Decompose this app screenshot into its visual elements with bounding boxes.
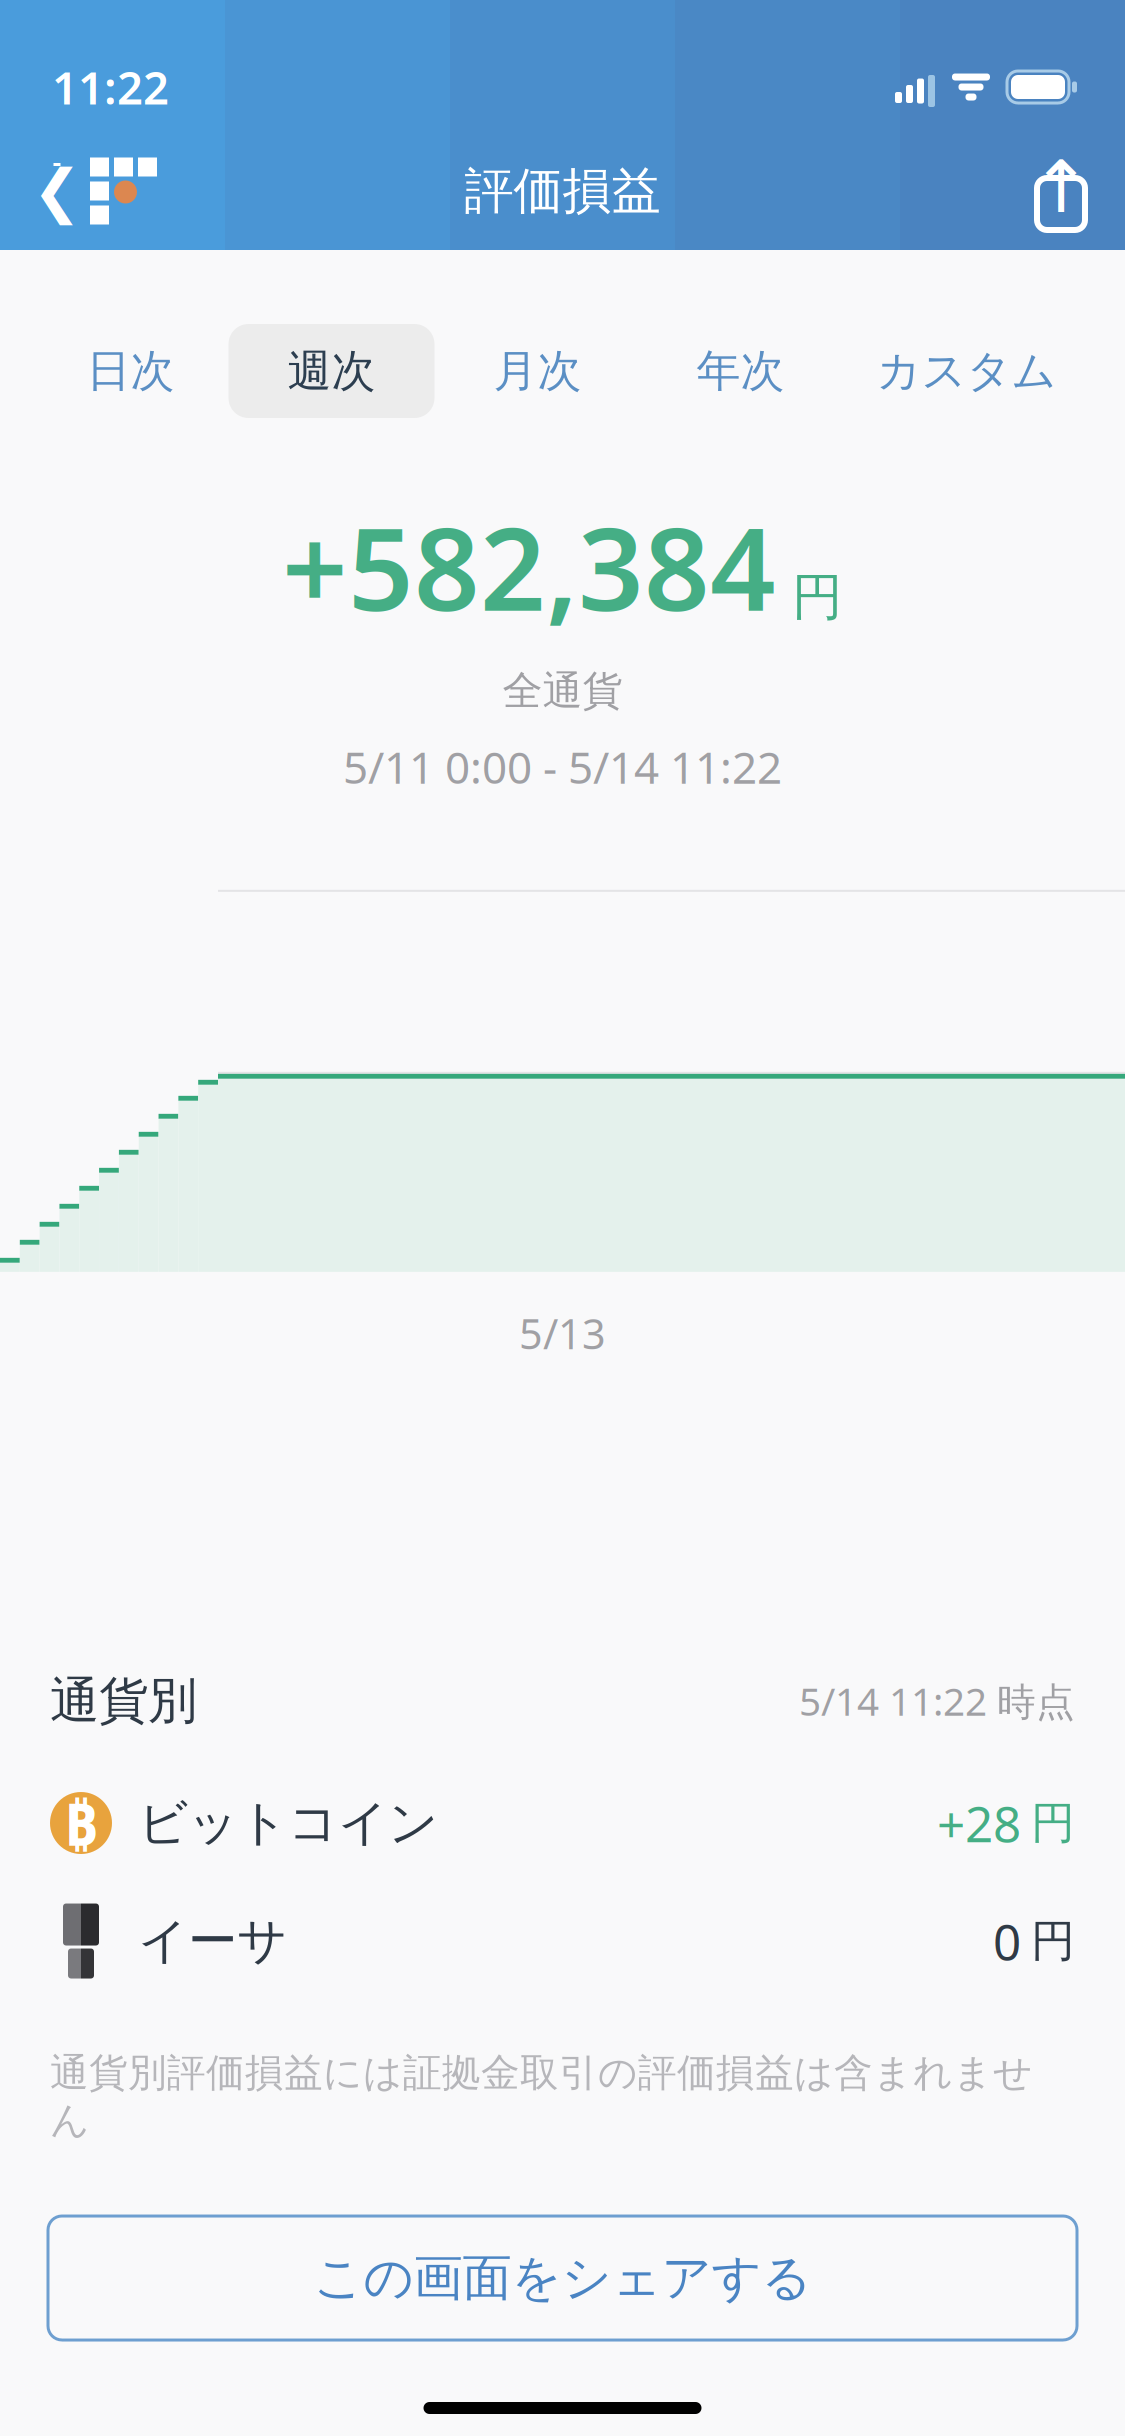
button[interactable]: この画面をシェアする (48, 2216, 1077, 2340)
staticText: 月次 (493, 344, 581, 398)
button[interactable]: 戻る (0, 136, 179, 246)
staticText: 5/13 (519, 1306, 606, 1361)
staticText: 0 (176, 1227, 200, 1282)
staticText: ❮ (32, 158, 81, 224)
staticText: ₿ (64, 1784, 98, 1862)
staticText: 通貨別 (50, 1670, 197, 1731)
button[interactable]: 年次 (640, 324, 840, 418)
staticText: 円 (1031, 1914, 1075, 1968)
staticText: 11:22 (52, 57, 169, 117)
button[interactable]: 共有 (997, 136, 1125, 246)
staticText: 日次 (86, 344, 174, 398)
button[interactable]: 月次 (434, 324, 640, 418)
button[interactable]: カスタム (840, 324, 1092, 418)
button[interactable]: ₿ (0, 1771, 1125, 1875)
staticText: 500,000 (45, 1045, 200, 1100)
staticText: カスタム (876, 344, 1056, 398)
staticText: 年次 (696, 344, 784, 398)
staticText: この画面をシェアする (313, 2248, 811, 2308)
button[interactable]: 週次 (228, 324, 434, 418)
staticText: イーサ (138, 1911, 287, 1971)
staticText: 5/11 0:00 - 5/14 11:22 (343, 737, 782, 796)
staticText: 5/14 11:22 時点 (799, 1675, 1075, 1726)
staticText: 評価損益 (464, 161, 660, 221)
staticText: +582,384 (282, 490, 776, 642)
button[interactable]: イーサ (0, 1889, 1125, 1993)
button[interactable]: 日次 (32, 324, 228, 418)
staticText: 週次 (287, 344, 375, 398)
staticText: ビットコイン (138, 1793, 438, 1853)
staticText: 全通貨 (502, 666, 622, 715)
staticText: 円 (792, 566, 843, 628)
staticText: 0 (993, 1908, 1021, 1974)
staticText: 通貨別評価損益には証拠金取引の評価損益は含まれません (50, 2049, 1033, 2144)
staticText: +28 (937, 1790, 1021, 1856)
staticText: ↑ (1031, 146, 1091, 228)
staticText: 円 (1031, 1796, 1075, 1850)
